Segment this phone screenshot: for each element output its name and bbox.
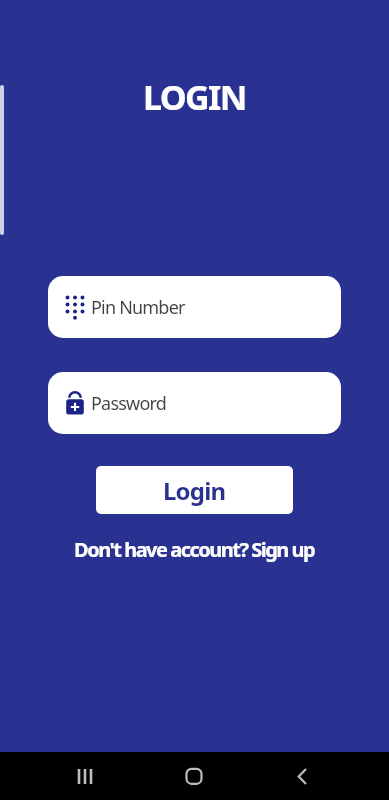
staticText: Login <box>163 474 226 507</box>
staticText: LOGIN <box>143 74 246 120</box>
staticText: Pin Number <box>91 295 185 320</box>
staticText: Password <box>91 391 167 416</box>
staticText: Don't have account? Sign up <box>74 536 315 563</box>
